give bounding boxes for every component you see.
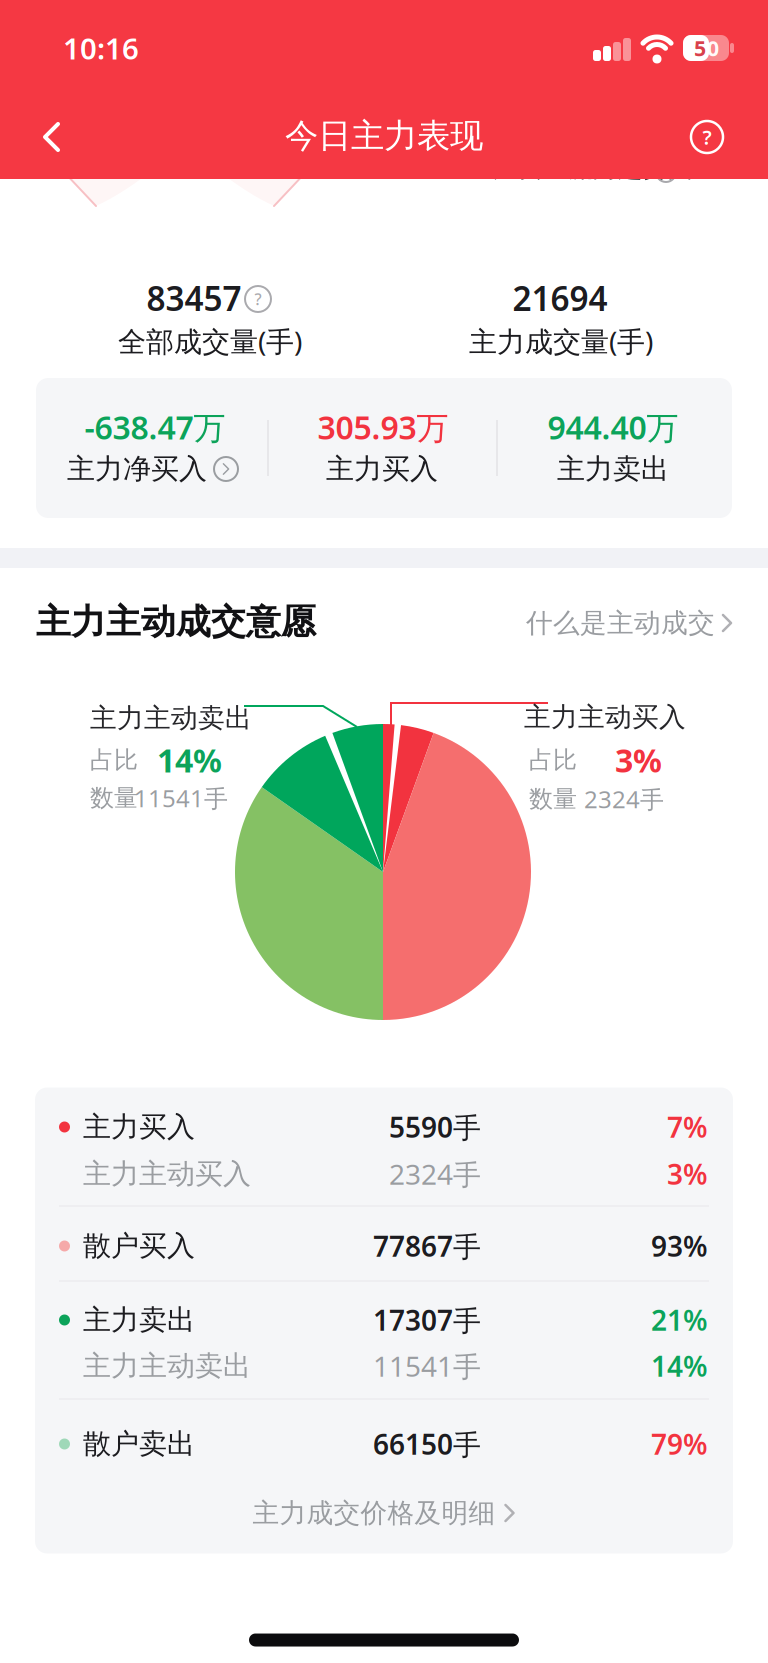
- staticText: 0: [707, 34, 719, 62]
- staticText: 占比: [90, 745, 138, 775]
- staticText: 10:16: [63, 28, 139, 67]
- staticText: 21%: [651, 1301, 708, 1339]
- staticText: 全部成交量(手): [118, 322, 302, 360]
- staticText: 3%: [667, 1155, 708, 1193]
- staticText: 散户买入: [83, 1229, 195, 1263]
- staticText: 17307手: [373, 1301, 481, 1339]
- staticText: 主力主动卖出: [83, 1349, 251, 1383]
- staticText: 3%: [615, 739, 662, 781]
- button[interactable]: 什么是主动成交: [433, 607, 733, 639]
- staticText: 21694: [512, 276, 607, 320]
- staticText: 主力成交量(手): [469, 322, 653, 360]
- staticText: 主力资金流向趋势图: [467, 152, 692, 183]
- button[interactable]: What is total volume: [243, 284, 273, 314]
- staticText: 14%: [157, 739, 222, 781]
- staticText: 散户卖出: [83, 1427, 195, 1461]
- staticText: 今日主力表现: [285, 115, 483, 156]
- staticText: 数量: [529, 784, 577, 814]
- staticText: 主力主动买入: [524, 701, 686, 733]
- button[interactable]: Help: [689, 119, 725, 155]
- staticText: 占比: [529, 745, 577, 775]
- staticText: 主力成交价格及明细: [252, 1497, 495, 1529]
- staticText: 2324手: [389, 1155, 481, 1193]
- staticText: 11541手: [134, 782, 228, 814]
- button[interactable]: Back: [42, 122, 62, 152]
- staticText: -638.47万: [84, 406, 225, 448]
- staticText: 主力主动买入: [83, 1157, 251, 1191]
- staticText: 305.93万: [317, 406, 448, 448]
- staticText: 7%: [667, 1108, 708, 1146]
- staticText: 主力卖出: [557, 452, 669, 486]
- staticText: 数量: [90, 783, 138, 813]
- staticText: ?: [702, 124, 711, 150]
- staticText: 主力买入: [326, 452, 438, 486]
- staticText: 主力主动卖出: [90, 702, 252, 734]
- staticText: 66150手: [373, 1425, 481, 1463]
- staticText: 93%: [651, 1227, 708, 1265]
- staticText: 11541手: [373, 1347, 481, 1385]
- staticText: 79%: [651, 1425, 708, 1463]
- staticText: 14%: [651, 1347, 708, 1385]
- staticText: 主力卖出: [83, 1303, 195, 1337]
- staticText: 主力主动成交意愿: [36, 601, 316, 643]
- staticText: 944.40万: [547, 406, 678, 448]
- staticText: 5: [694, 34, 706, 62]
- staticText: 77867手: [373, 1227, 481, 1265]
- button[interactable]: 主力净买入 detail: [67, 452, 239, 486]
- staticText: ?: [254, 288, 261, 310]
- staticText: 83457: [146, 276, 241, 320]
- staticText: 主力买入: [83, 1110, 195, 1144]
- staticText: 主力净买入: [67, 452, 207, 486]
- button[interactable]: 主力成交价格及明细: [252, 1497, 515, 1529]
- staticText: 什么是主动成交: [526, 607, 715, 639]
- staticText: 5590手: [389, 1108, 481, 1146]
- staticText: 2324手: [584, 783, 664, 815]
